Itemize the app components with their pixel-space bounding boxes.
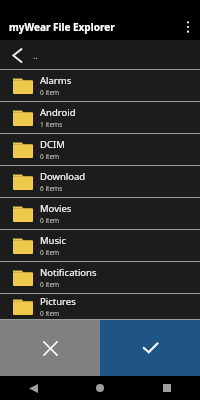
staticText: Notifications <box>40 266 97 279</box>
button[interactable]: Alarms <box>0 70 200 102</box>
staticText: Download <box>40 170 86 183</box>
button[interactable]: Android <box>0 102 200 134</box>
button[interactable]: More options <box>176 14 200 40</box>
staticText: .. <box>33 49 38 61</box>
button[interactable]: Confirm <box>100 320 200 376</box>
button[interactable]: .. <box>0 40 200 70</box>
staticText: 6 items <box>40 184 63 193</box>
staticText: 0 item <box>40 309 60 318</box>
staticText: Music <box>40 234 67 247</box>
staticText: 0 item <box>40 216 60 225</box>
staticText: DCIM <box>40 138 65 151</box>
button[interactable]: DCIM <box>0 134 200 166</box>
staticText: 0 item <box>40 280 60 289</box>
button[interactable]: Back <box>0 376 66 400</box>
staticText: Alarms <box>40 74 72 87</box>
button[interactable]: Recent apps <box>133 376 200 400</box>
button[interactable]: Music <box>0 230 200 262</box>
staticText: Android <box>40 106 76 119</box>
button[interactable]: Home <box>66 376 133 400</box>
staticText: 0 item <box>40 248 60 257</box>
button[interactable]: Movies <box>0 198 200 230</box>
button[interactable]: Notifications <box>0 262 200 294</box>
staticText: Movies <box>40 202 72 215</box>
staticText: 0 item <box>40 152 60 161</box>
staticText: 0 item <box>40 88 60 97</box>
button[interactable]: Cancel <box>0 320 100 376</box>
button[interactable]: Download <box>0 166 200 198</box>
staticText: 1 items <box>40 120 63 129</box>
staticText: Pictures <box>40 295 76 308</box>
button[interactable]: Pictures <box>0 294 200 320</box>
staticText: myWear File Explorer <box>9 20 115 34</box>
